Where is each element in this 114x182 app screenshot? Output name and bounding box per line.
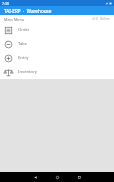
- button[interactable]: Inventory: [0, 65, 114, 79]
- staticText: TAI-ERP · Warehouse: [4, 8, 52, 14]
- button[interactable]: Home: [46, 172, 68, 182]
- button[interactable]: Order: [0, 23, 114, 37]
- staticText: 7:30: [2, 1, 9, 6]
- staticText: Inventory: [18, 69, 37, 75]
- button[interactable]: Entry: [0, 51, 114, 65]
- staticText: Order: [18, 27, 30, 33]
- button[interactable]: Recent apps: [68, 172, 90, 182]
- button[interactable]: Take: [0, 37, 114, 51]
- staticText: v1.0 Online: [92, 17, 110, 21]
- staticText: Entry: [18, 55, 29, 61]
- button[interactable]: Back: [24, 172, 46, 182]
- staticText: Main Menu: [4, 17, 25, 22]
- staticText: Take: [18, 41, 27, 47]
